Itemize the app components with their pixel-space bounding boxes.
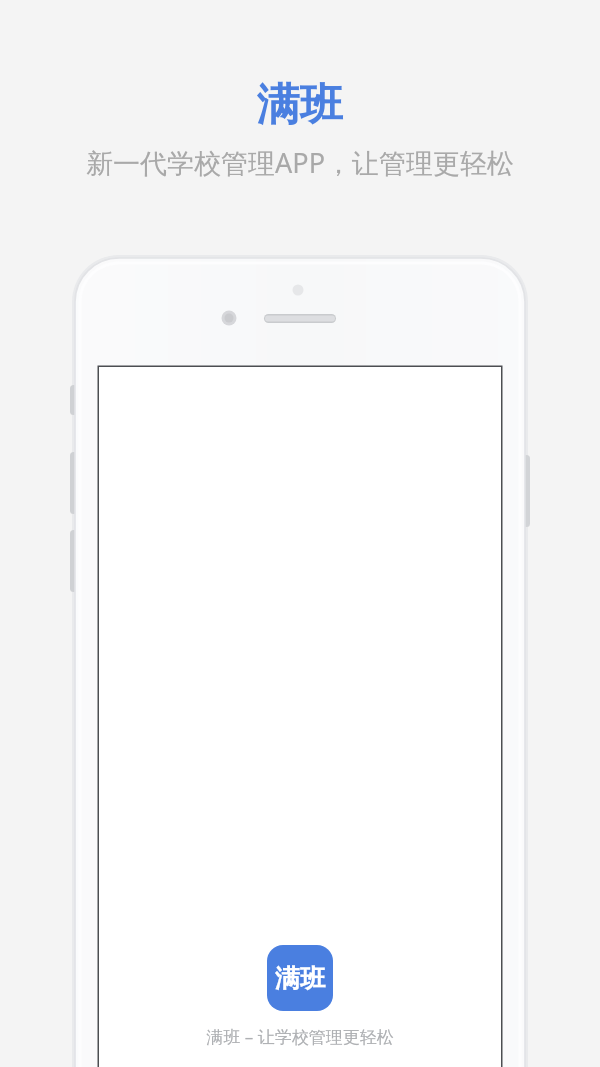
staticText: 满班 <box>257 78 343 132</box>
staticText: 满班 – 让学校管理更轻松 <box>206 1025 394 1048</box>
staticText: 新一代学校管理APP，让管理更轻松 <box>86 144 514 181</box>
staticText: 满班 <box>275 963 325 994</box>
button[interactable]: 满班 app icon <box>267 945 333 1011</box>
